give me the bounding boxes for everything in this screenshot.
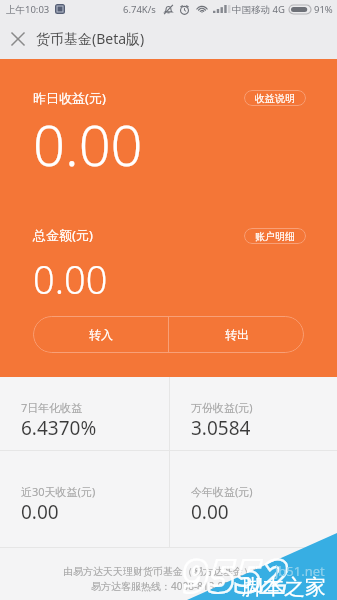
- staticText: jb51.net: [275, 562, 325, 580]
- staticText: 91%: [314, 3, 333, 16]
- staticText: 6.74K/s: [123, 3, 156, 16]
- staticText: 货币基金(Beta版): [36, 29, 145, 48]
- staticText: 0.00: [191, 499, 229, 525]
- staticText: 0.00: [33, 253, 108, 305]
- button[interactable]: 转入: [33, 316, 168, 353]
- button[interactable]: 近30天收益(元): [0, 451, 169, 547]
- staticText: 万份收益(元): [191, 400, 253, 415]
- staticText: 今年收益(元): [191, 484, 253, 499]
- button[interactable]: 7日年化收益: [0, 377, 169, 450]
- staticText: 0.00: [21, 499, 59, 525]
- staticText: 7日年化收益: [21, 400, 83, 415]
- staticText: 9552: [182, 544, 289, 600]
- staticText: 0.00: [33, 106, 143, 182]
- staticText: 转入: [89, 327, 113, 342]
- staticText: 账户明细: [255, 230, 295, 243]
- staticText: 脚本之家: [242, 574, 326, 600]
- staticText: 收益说明: [255, 92, 295, 105]
- staticText: 3.0584: [191, 415, 251, 441]
- staticText: 近30天收益(元): [21, 484, 96, 499]
- staticText: 转出: [225, 327, 249, 342]
- staticText: 易方达客服热线：4008-818-088: [91, 579, 235, 593]
- staticText: 由易方达天天理财货币基金（易方达基金）提供: [63, 565, 273, 578]
- button[interactable]: Close: [0, 18, 36, 59]
- staticText: 总金额(元): [33, 226, 93, 244]
- button[interactable]: 转出: [169, 316, 304, 353]
- button[interactable]: 今年收益(元): [170, 451, 337, 547]
- button[interactable]: 账户明细: [244, 228, 306, 244]
- staticText: 6.4370%: [21, 415, 97, 441]
- staticText: 昨日收益(元): [33, 89, 106, 107]
- staticText: 上午10:03: [6, 3, 50, 16]
- button[interactable]: 万份收益(元): [170, 377, 337, 450]
- staticText: 中国移动 4G: [232, 3, 285, 16]
- button[interactable]: 收益说明: [244, 90, 306, 106]
